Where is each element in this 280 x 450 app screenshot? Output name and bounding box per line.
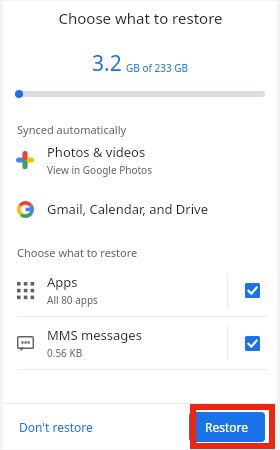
staticText: 0.56 KB bbox=[47, 346, 83, 360]
staticText: All 80 apps bbox=[47, 293, 98, 307]
button[interactable]: Gmail, Calendar, and Drive bbox=[3, 191, 277, 227]
staticText: Apps bbox=[47, 273, 78, 291]
button[interactable]: Apps checkbox bbox=[245, 283, 260, 298]
button[interactable]: Don't restore bbox=[15, 413, 97, 441]
staticText: Photos & videos bbox=[47, 143, 146, 161]
staticText: Choose what to restore bbox=[58, 8, 223, 28]
staticText: Gmail, Calendar, and Drive bbox=[47, 200, 209, 218]
button[interactable]: MMS messages checkbox bbox=[245, 336, 260, 351]
button[interactable]: Restore bbox=[189, 412, 265, 442]
staticText: Choose what to restore bbox=[17, 245, 138, 260]
staticText: GB of 233 GB bbox=[126, 61, 189, 75]
staticText: Don't restore bbox=[19, 419, 93, 435]
button[interactable]: MMS messages bbox=[3, 317, 277, 369]
staticText: View in Google Photos bbox=[47, 163, 152, 177]
button[interactable]: Photos & videos bbox=[3, 137, 277, 183]
staticText: Synced automatically bbox=[17, 122, 127, 137]
staticText: 3.2 bbox=[92, 49, 122, 78]
staticText: Restore bbox=[205, 419, 249, 435]
button[interactable]: Apps bbox=[3, 264, 277, 316]
staticText: MMS messages bbox=[47, 326, 142, 344]
